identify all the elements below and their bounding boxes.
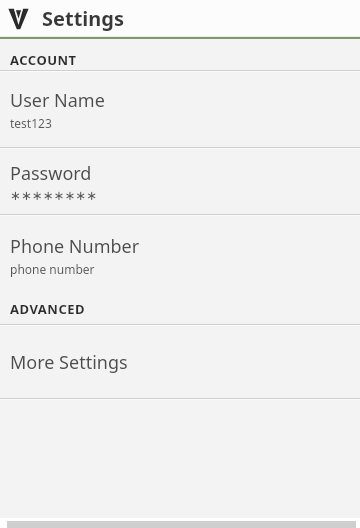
- staticText: ∗∗∗∗∗∗∗∗: [10, 188, 98, 203]
- button[interactable]: User Name: [0, 72, 360, 147]
- other: App logo: [8, 7, 29, 30]
- staticText: User Name: [10, 88, 105, 113]
- staticText: More Settings: [10, 350, 128, 375]
- button[interactable]: App logo: [0, 0, 360, 37]
- button[interactable]: Password: [0, 149, 360, 214]
- button[interactable]: More Settings: [0, 326, 360, 398]
- staticText: ADVANCED: [10, 300, 86, 318]
- staticText: phone number: [10, 261, 95, 277]
- staticText: Password: [10, 161, 92, 186]
- staticText: ACCOUNT: [10, 51, 77, 69]
- button[interactable]: Phone Number: [0, 216, 360, 294]
- staticText: Settings: [42, 5, 124, 32]
- staticText: test123: [10, 115, 52, 131]
- staticText: Phone Number: [10, 234, 140, 259]
